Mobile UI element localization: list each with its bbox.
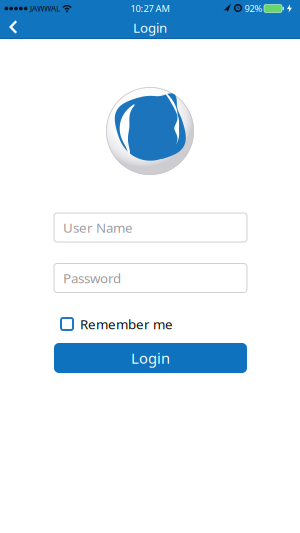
button[interactable]: Password bbox=[54, 263, 247, 292]
button[interactable]: User Name bbox=[54, 213, 247, 242]
staticText: Password bbox=[63, 269, 121, 287]
button[interactable]: Back bbox=[3, 17, 23, 37]
staticText: Remember me bbox=[80, 315, 173, 333]
staticText: Login bbox=[131, 348, 170, 368]
button[interactable]: Remember me bbox=[61, 316, 254, 332]
button[interactable]: Login bbox=[54, 343, 247, 373]
staticText: 10:27 AM bbox=[130, 2, 169, 15]
staticText: User Name bbox=[63, 219, 133, 236]
staticText: JAWWAL bbox=[30, 3, 60, 14]
staticText: 92% bbox=[244, 2, 262, 15]
staticText: Login bbox=[133, 19, 167, 36]
